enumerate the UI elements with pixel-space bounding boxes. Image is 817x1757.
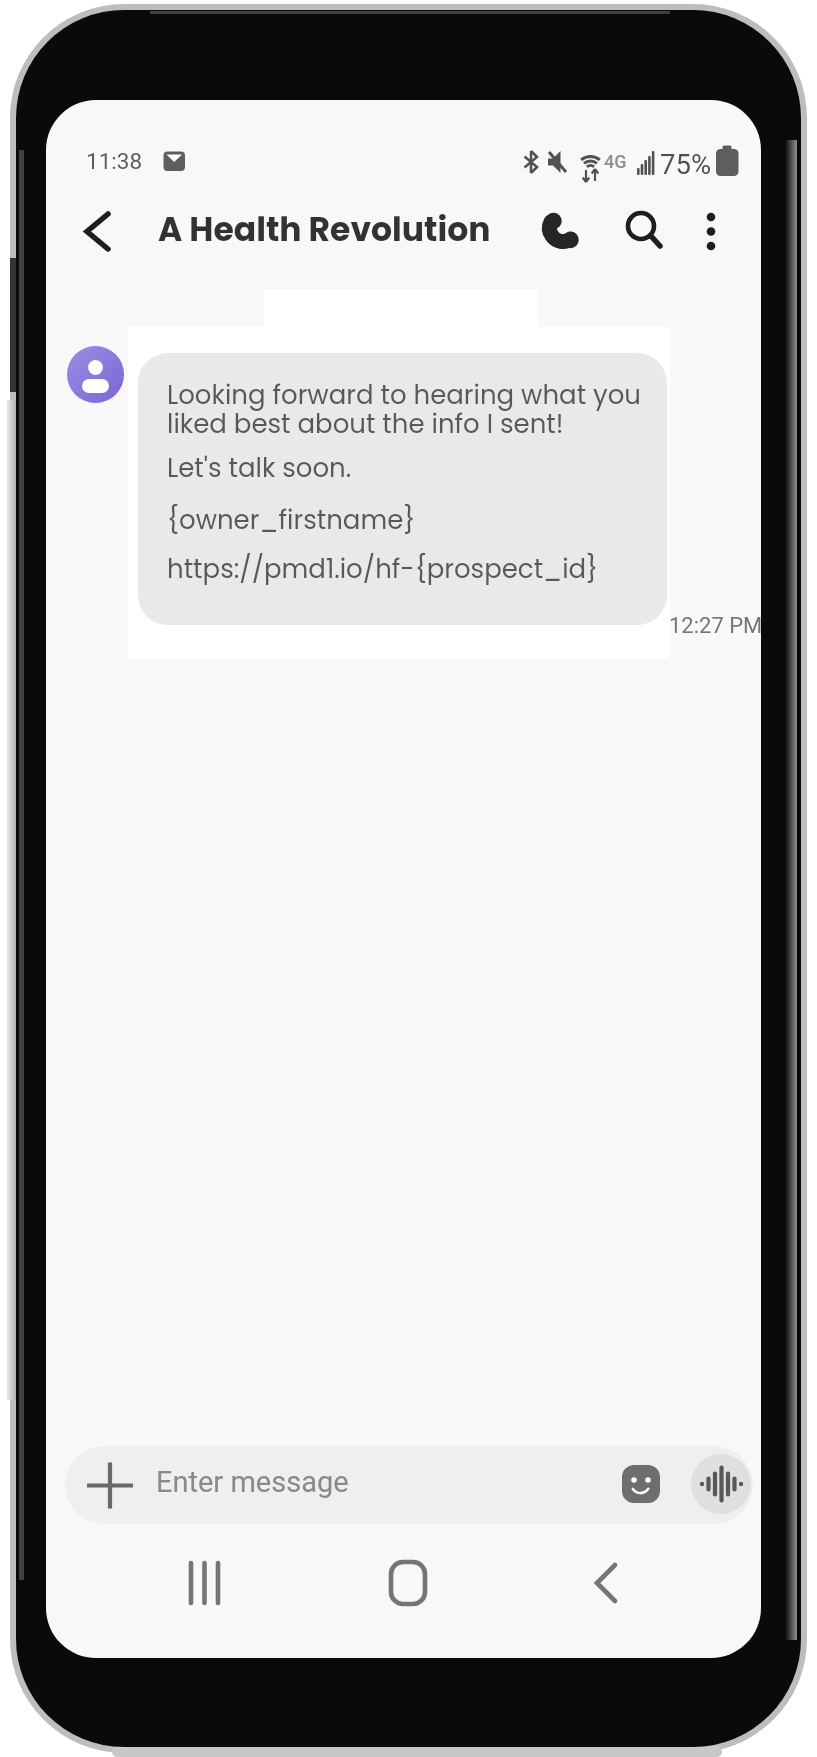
button[interactable] <box>616 1458 668 1510</box>
staticText: 75% <box>660 148 712 180</box>
staticText: Enter message <box>156 1465 349 1499</box>
staticText: A Health Revolution <box>158 206 491 252</box>
staticText: Looking forward to hearing what you like… <box>167 377 641 442</box>
staticText: Let's talk soon. <box>167 450 352 486</box>
staticText: {owner_firstname} <box>167 502 416 538</box>
button[interactable] <box>138 353 667 625</box>
staticText: https://pmd1.io/hf-{prospect_id} <box>167 551 599 587</box>
button[interactable] <box>376 1553 436 1613</box>
button[interactable] <box>678 198 742 264</box>
button[interactable] <box>176 1553 236 1613</box>
button[interactable] <box>528 198 594 264</box>
staticText: 11:38 <box>86 148 143 174</box>
button[interactable] <box>84 1459 136 1511</box>
button[interactable] <box>65 1446 753 1524</box>
button[interactable] <box>586 1553 646 1613</box>
button[interactable] <box>72 198 138 264</box>
button[interactable] <box>608 196 674 262</box>
button[interactable] <box>67 346 124 403</box>
staticText: 12:27 PM <box>669 613 763 639</box>
staticText: 4G <box>604 151 627 172</box>
button[interactable] <box>691 1454 751 1514</box>
